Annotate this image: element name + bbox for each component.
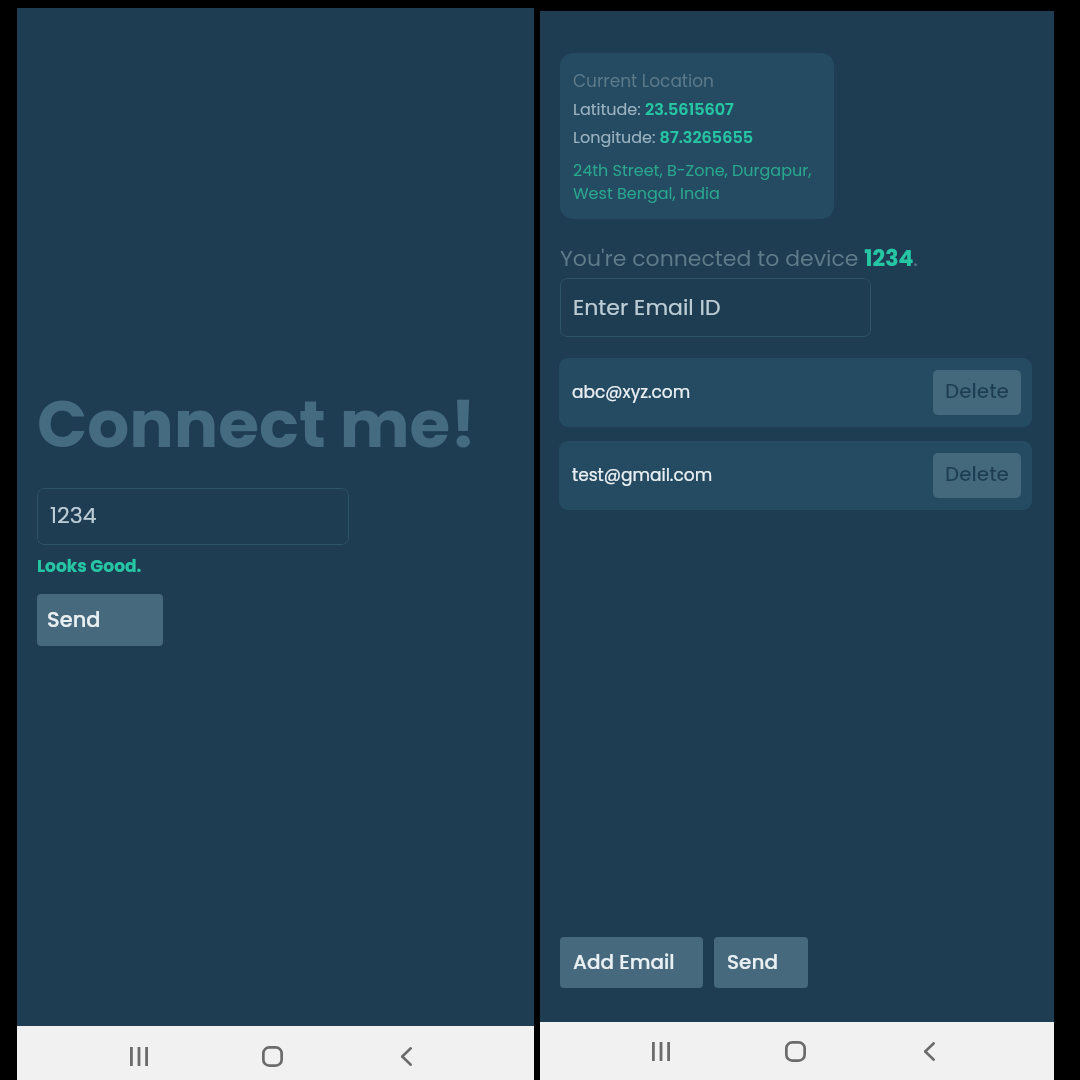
staticText: Send [47,605,101,635]
button[interactable]: Home [769,1025,821,1077]
button[interactable]: abc@xyz.com [559,358,1032,427]
button[interactable]: Send [37,594,163,646]
staticText: test@gmail.com [572,463,713,488]
staticText: abc@xyz.com [572,380,691,405]
button[interactable]: Back [903,1025,955,1077]
button[interactable]: test@gmail.com [559,441,1032,510]
staticText: Enter Email ID [573,292,721,324]
button[interactable]: Back [380,1030,432,1080]
staticText: Send [727,948,778,977]
staticText: Looks Good. [37,554,142,579]
staticText: Connect me! [37,390,477,468]
button[interactable]: Add Email [560,937,703,988]
staticText: Delete [945,377,1009,406]
staticText: 1234 [50,500,97,532]
button[interactable]: 1234 [37,488,349,545]
staticText: Add Email [573,948,675,977]
button[interactable]: Send [714,937,808,988]
button[interactable]: Enter Email ID [560,278,871,337]
button[interactable]: Delete [933,370,1021,415]
staticText: Delete [945,460,1009,489]
button[interactable]: Delete [933,453,1021,498]
staticText: 24th Street, B-Zone, Durgapur, West Beng… [573,159,821,205]
staticText: Latitude: 23.5615607 [573,94,734,122]
staticText: You're connected to device 1234. [560,243,918,274]
staticText: Current Location [573,66,714,94]
button[interactable]: Recent apps [635,1025,687,1077]
button[interactable]: Home [246,1030,298,1080]
button[interactable]: Recent apps [113,1030,165,1080]
staticText: Longitude: 87.3265655 [573,122,754,150]
